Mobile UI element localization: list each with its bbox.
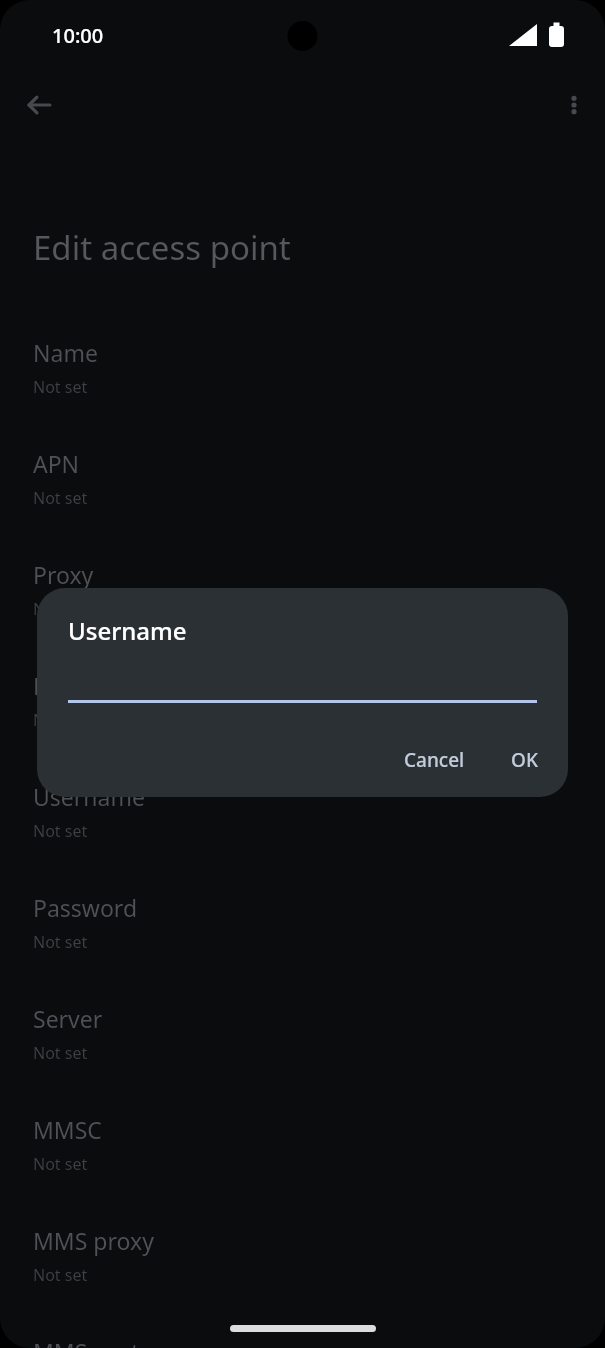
staticText: MMS proxy — [33, 1225, 154, 1256]
button[interactable]: Server — [0, 999, 605, 1068]
staticText: Not set — [33, 487, 88, 509]
button[interactable]: Port — [0, 666, 605, 735]
staticText: Proxy — [33, 559, 94, 590]
button[interactable]: MMS proxy — [0, 1221, 605, 1290]
button[interactable]: Proxy — [0, 555, 605, 624]
button[interactable]: Password — [0, 888, 605, 957]
button[interactable]: Cancel — [388, 739, 481, 781]
button[interactable]: MMSC — [0, 1110, 605, 1179]
staticText: MMS port — [33, 1336, 140, 1348]
staticText: MMSC — [33, 1114, 102, 1145]
staticText: Not set — [33, 598, 88, 620]
button[interactable]: More options — [549, 80, 599, 130]
button[interactable]: Back — [14, 80, 64, 130]
staticText: Not set — [33, 376, 88, 398]
staticText: Name — [33, 337, 98, 368]
staticText: Not set — [33, 709, 88, 731]
button[interactable]: MMS port — [0, 1332, 605, 1348]
staticText: Not set — [33, 1153, 88, 1175]
staticText: Password — [33, 892, 138, 923]
staticText: Cancel — [404, 747, 465, 773]
staticText: Username — [33, 781, 145, 812]
staticText: Edit access point — [33, 225, 291, 270]
staticText: Not set — [33, 820, 88, 842]
staticText: Username — [68, 614, 187, 647]
button[interactable]: Username — [0, 777, 605, 846]
button[interactable]: APN — [0, 444, 605, 513]
staticText: Not set — [33, 1042, 88, 1064]
staticText: Server — [33, 1003, 103, 1034]
staticText: APN — [33, 448, 80, 479]
staticText: Port — [33, 670, 79, 701]
staticText: OK — [511, 747, 538, 773]
staticText: 10:00 — [52, 22, 104, 49]
button[interactable]: OK — [495, 739, 554, 781]
button[interactable]: Name — [0, 333, 605, 402]
staticText: Not set — [33, 931, 88, 953]
staticText: Not set — [33, 1264, 88, 1286]
